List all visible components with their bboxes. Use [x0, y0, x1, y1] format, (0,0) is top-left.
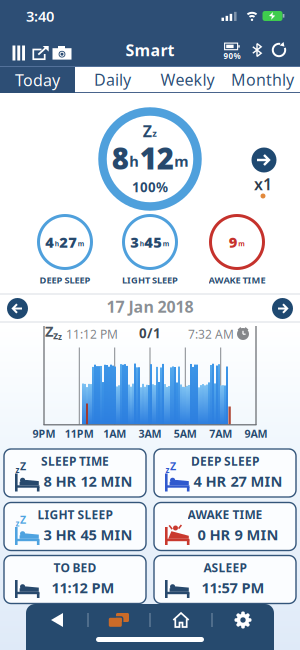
staticText: 100%: [132, 178, 168, 196]
button[interactable]: Daily: [75, 66, 150, 92]
staticText: z: [58, 332, 62, 342]
button[interactable]: Previous day: [7, 298, 28, 319]
staticText: 3 HR 45 MIN: [43, 525, 132, 544]
staticText: 5AM: [174, 426, 197, 441]
staticText: 4: [45, 232, 54, 252]
staticText: Smart: [125, 39, 174, 61]
staticText: 11:12 PM: [66, 326, 118, 342]
staticText: z: [15, 465, 19, 475]
button[interactable]: Monthly: [225, 66, 300, 92]
staticText: Z: [170, 459, 176, 473]
staticText: 0/1: [139, 324, 161, 342]
staticText: 9AM: [244, 426, 267, 441]
staticText: 12: [140, 138, 174, 177]
staticText: LIGHT SLEEP: [122, 274, 178, 286]
staticText: 9: [229, 232, 238, 252]
button[interactable]: Settings: [234, 611, 252, 629]
staticText: SLEEP TIME: [41, 453, 109, 469]
button[interactable]: Apps: [108, 612, 130, 628]
staticText: 27: [59, 232, 77, 252]
staticText: 8 HR 12 MIN: [43, 471, 132, 491]
staticText: 17 Jan 2018: [106, 296, 193, 317]
staticText: Z: [20, 459, 26, 473]
button[interactable]: Next: [251, 147, 276, 172]
button[interactable]: Refresh: [271, 42, 287, 58]
staticText: 45: [144, 232, 162, 252]
staticText: 7:32 AM: [188, 326, 234, 342]
staticText: m: [163, 239, 170, 248]
button[interactable]: Home: [172, 612, 189, 628]
staticText: h: [140, 239, 144, 248]
staticText: 11PM: [65, 426, 94, 441]
staticText: DEEP SLEEP: [39, 274, 90, 286]
staticText: 11:57 PM: [201, 578, 264, 597]
staticText: m: [78, 239, 85, 248]
staticText: 3:40: [26, 6, 54, 26]
staticText: TO BED: [53, 559, 96, 575]
button[interactable]: Device battery: [224, 42, 242, 60]
staticText: 0 HR 9 MIN: [197, 525, 278, 544]
staticText: 3AM: [138, 426, 161, 441]
button[interactable]: Weekly: [150, 66, 225, 92]
staticText: 11:12 PM: [51, 578, 114, 597]
staticText: AWAKE TIME: [187, 506, 262, 522]
staticText: Z: [45, 321, 53, 341]
staticText: 7AM: [209, 426, 232, 441]
staticText: 3: [130, 232, 139, 252]
staticText: LIGHT SLEEP: [37, 506, 112, 522]
staticText: Weekly: [160, 69, 214, 90]
staticText: AWAKE TIME: [208, 274, 265, 286]
staticText: 4 HR 27 MIN: [193, 471, 282, 491]
button[interactable]: Menu: [12, 45, 25, 60]
button[interactable]: Next day: [272, 298, 293, 319]
button[interactable]: Today: [0, 67, 75, 93]
staticText: h: [129, 151, 139, 171]
staticText: z: [53, 328, 58, 342]
button[interactable]: Share: [32, 45, 49, 60]
staticText: 90%: [223, 50, 240, 61]
staticText: 9PM: [32, 426, 55, 441]
staticText: Z: [20, 512, 26, 527]
staticText: z: [15, 518, 19, 529]
staticText: h: [55, 239, 59, 248]
staticText: z: [152, 127, 157, 139]
staticText: Today: [15, 69, 60, 91]
staticText: 8: [112, 138, 129, 177]
staticText: ASLEEP: [203, 559, 246, 575]
staticText: m: [174, 151, 188, 171]
staticText: m: [238, 239, 245, 248]
staticText: z: [165, 465, 169, 475]
button[interactable]: Bluetooth: [252, 43, 261, 56]
staticText: 1AM: [103, 426, 126, 441]
staticText: DEEP SLEEP: [191, 453, 259, 469]
staticText: Daily: [94, 69, 131, 90]
button[interactable]: Back: [51, 613, 63, 627]
staticText: Z: [143, 120, 152, 142]
staticText: Monthly: [231, 69, 294, 90]
button[interactable]: Camera: [52, 46, 71, 60]
staticText: x1: [254, 173, 272, 195]
